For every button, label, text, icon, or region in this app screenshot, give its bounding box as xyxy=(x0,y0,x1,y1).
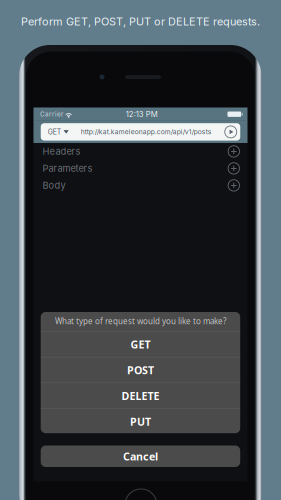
button[interactable]: Body xyxy=(33,177,247,194)
staticText: Cancel xyxy=(123,449,158,463)
button[interactable]: Parameters xyxy=(33,160,247,177)
staticText: GET xyxy=(48,128,61,136)
staticText: Body xyxy=(42,180,65,191)
staticText: Headers xyxy=(42,146,80,157)
button[interactable]: GET xyxy=(41,332,240,357)
button[interactable]: Cancel xyxy=(41,445,240,467)
staticText: DELETE xyxy=(121,389,159,403)
staticText: GET xyxy=(130,337,150,351)
staticText: http://kat.kameleonapp.com/api/v1/posts xyxy=(81,128,212,136)
staticText: Perform GET, POST, PUT or DELETE request… xyxy=(21,15,260,28)
button[interactable]: Headers xyxy=(33,143,247,160)
staticText: PUT xyxy=(130,414,151,429)
button[interactable]: Send request xyxy=(224,123,238,141)
staticText: What type of request would you like to m… xyxy=(55,316,226,326)
button[interactable]: GET xyxy=(41,123,73,141)
button[interactable]: DELETE xyxy=(41,383,240,408)
staticText: Parameters xyxy=(42,163,92,174)
staticText: Carrier xyxy=(40,110,63,118)
staticText: 12:13 PM xyxy=(126,109,158,119)
button[interactable]: PUT xyxy=(41,409,240,434)
staticText: POST xyxy=(127,363,154,377)
button[interactable]: POST xyxy=(41,357,240,383)
